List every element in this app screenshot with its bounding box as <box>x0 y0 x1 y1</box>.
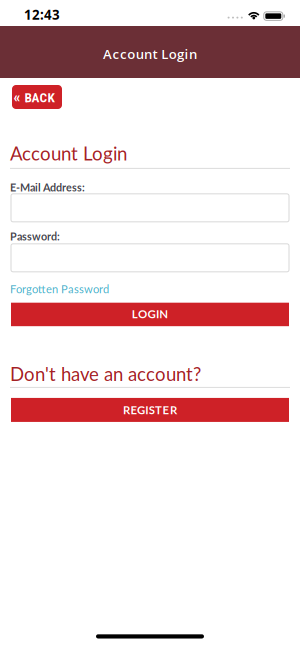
staticText: Forgotten Password <box>10 282 109 296</box>
button[interactable] <box>11 194 289 222</box>
staticText: E-Mail Address: <box>10 181 85 194</box>
staticText: Password: <box>10 230 60 243</box>
staticText: « BACK <box>13 88 54 106</box>
button[interactable]: Forgotten Password <box>10 282 109 296</box>
button[interactable]: LOGIN <box>11 303 289 326</box>
staticText: 12:43 <box>24 6 60 23</box>
button[interactable]: REGISTER <box>11 398 289 422</box>
button[interactable]: « BACK <box>12 85 62 109</box>
staticText: Don't have an account? <box>10 363 201 385</box>
button[interactable] <box>11 244 289 272</box>
staticText: Account Login <box>10 142 127 164</box>
staticText: LOGIN <box>132 307 168 321</box>
staticText: REGISTER <box>123 403 177 417</box>
staticText: Account Login <box>103 45 197 63</box>
